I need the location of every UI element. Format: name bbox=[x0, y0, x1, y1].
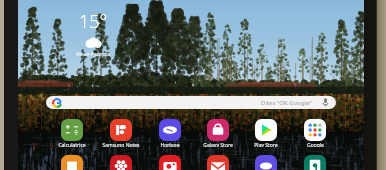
staticText: Horloge bbox=[160, 142, 180, 147]
staticText: Google bbox=[307, 142, 324, 147]
button[interactable]: Google bbox=[291, 119, 339, 147]
staticText: Galaxy Store bbox=[203, 142, 233, 147]
button[interactable]: App $idx bbox=[48, 155, 96, 170]
staticText: Calculatrice bbox=[58, 142, 86, 147]
button[interactable]: Samsung Notes bbox=[97, 119, 145, 147]
staticText: Samsung Notes bbox=[102, 142, 140, 147]
button[interactable]: App $idx bbox=[242, 155, 290, 170]
staticText: Play Store bbox=[254, 142, 278, 147]
staticText: 15° bbox=[79, 9, 108, 34]
button[interactable]: Galaxy Store bbox=[194, 119, 242, 147]
button[interactable]: Play Store bbox=[242, 119, 290, 147]
staticText: Aix-en-Provence bbox=[76, 51, 111, 57]
button[interactable]: Calculatrice bbox=[48, 119, 96, 147]
button[interactable]: App $idx bbox=[291, 155, 339, 170]
button[interactable]: Dites "OK Google" bbox=[46, 96, 336, 109]
button[interactable]: Horloge bbox=[146, 119, 194, 147]
button[interactable]: App $idx bbox=[146, 155, 194, 170]
staticText: Dites "OK Google" bbox=[261, 99, 312, 107]
button[interactable]: App $idx bbox=[194, 155, 242, 170]
button[interactable]: App $idx bbox=[97, 155, 145, 170]
